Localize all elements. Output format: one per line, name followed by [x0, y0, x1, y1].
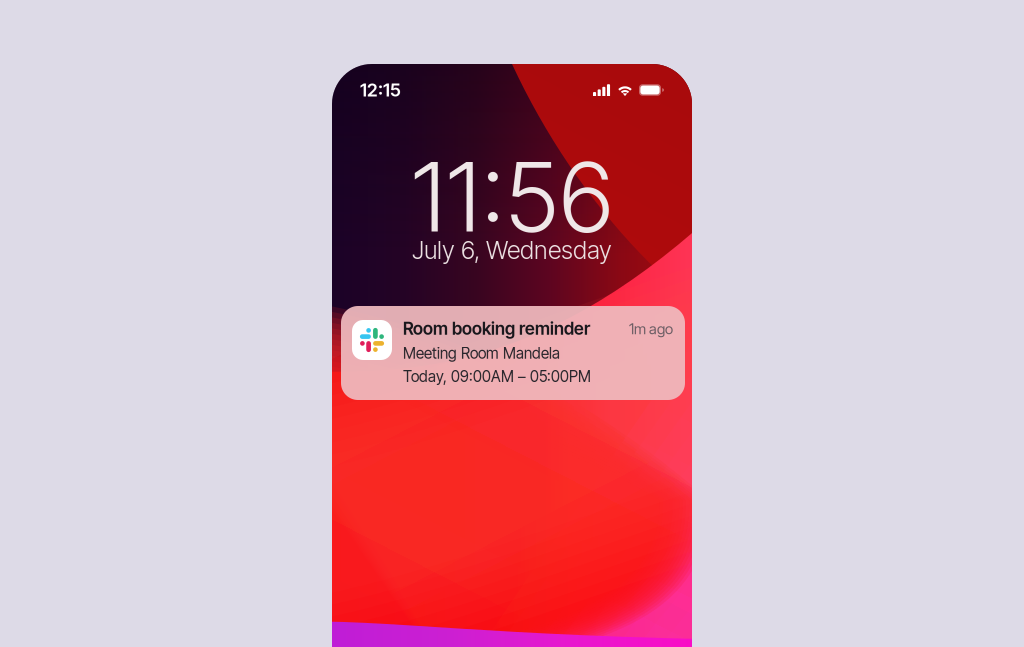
staticText: 1m ago [629, 320, 673, 338]
staticText: Room booking reminder [403, 318, 590, 339]
button[interactable]: Room booking reminder [341, 306, 685, 400]
staticText: July 6, Wednesday [412, 235, 612, 265]
staticText: Today, 09:00AM – 05:00PM [403, 367, 591, 386]
staticText: 11:56 [411, 139, 613, 255]
staticText: 12:15 [360, 79, 401, 101]
staticText: Meeting Room Mandela [403, 344, 560, 362]
